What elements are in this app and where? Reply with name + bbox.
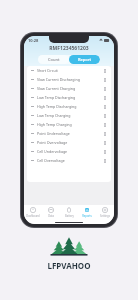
button[interactable]: Slow Current Discharging (27, 75, 111, 84)
button[interactable]: Point Overvoltage (27, 138, 111, 147)
staticText: Slow Current Charging (37, 86, 103, 91)
staticText: Battery (65, 214, 74, 218)
staticText: Reports (82, 214, 92, 218)
staticText: Point Undervoltage (37, 131, 103, 136)
staticText: Count (48, 57, 60, 62)
button[interactable]: Settings (96, 205, 114, 220)
button[interactable]: Count (38, 55, 69, 64)
staticText: Cell Undervoltage (37, 149, 103, 154)
staticText: RMF1234561203 (49, 45, 89, 52)
button[interactable]: Reports (78, 205, 96, 220)
staticText: Dashboard (26, 214, 40, 218)
button[interactable]: High Temp Discharging (27, 102, 111, 111)
staticText: Slow Current Discharging (37, 77, 103, 82)
button[interactable]: Data (42, 205, 60, 220)
button[interactable]: Dashboard (24, 205, 42, 220)
button[interactable]: High Temp Charging (27, 120, 111, 129)
staticText: Short Circuit (37, 68, 103, 73)
staticText: High Temp Discharging (37, 104, 103, 109)
staticText: Low Temp Charging (37, 113, 103, 118)
staticText: Point Overvoltage (37, 140, 103, 145)
button[interactable]: Cell Undervoltage (27, 147, 111, 156)
staticText: Low Temp Discharging (37, 95, 103, 100)
button[interactable]: Slow Current Charging (27, 84, 111, 93)
staticText: High Temp Charging (37, 122, 103, 127)
staticText: 10:28 (28, 38, 39, 43)
button[interactable]: Report (69, 55, 100, 64)
button[interactable]: Low Temp Discharging (27, 93, 111, 102)
staticText: Data (48, 214, 54, 218)
button[interactable]: Battery (60, 205, 78, 220)
button[interactable]: Short Circuit (27, 66, 111, 75)
button[interactable]: Point Undervoltage (27, 129, 111, 138)
button[interactable]: Low Temp Charging (27, 111, 111, 120)
staticText: LFPVAHOO (47, 260, 91, 271)
staticText: Cell Overvoltage (37, 158, 103, 163)
button[interactable]: Cell Overvoltage (27, 156, 111, 165)
staticText: Report (78, 57, 91, 62)
staticText: Settings (100, 214, 110, 218)
